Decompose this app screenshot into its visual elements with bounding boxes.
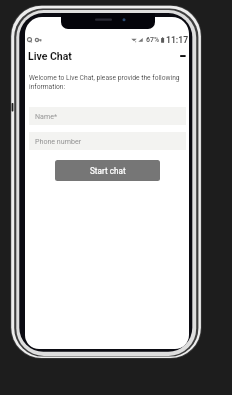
staticText: Welcome to Live Chat, please provide the… [29,74,184,91]
button[interactable]: Name* [29,107,186,125]
staticText: 67% [146,36,160,44]
staticText: Name* [35,112,57,120]
staticText: Phone number [35,137,82,145]
button[interactable]: Start chat [55,160,160,181]
button[interactable]: Minimize [178,51,188,61]
staticText: Live Chat [28,50,72,62]
staticText: 11:17 [166,35,189,45]
staticText: Start chat [90,166,126,176]
button[interactable]: Phone number [29,132,186,150]
